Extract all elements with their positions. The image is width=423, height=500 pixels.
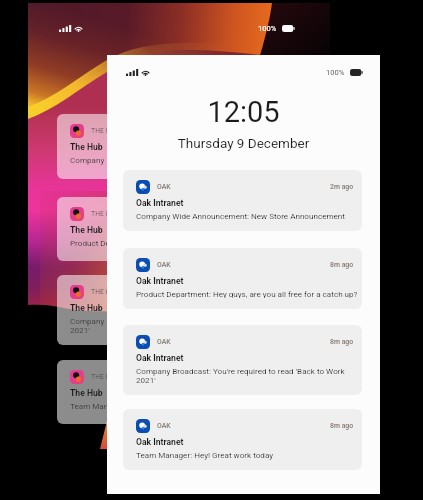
staticText: 8m ago xyxy=(330,422,354,430)
staticText: Company Broadcast: You're required to re… xyxy=(136,366,345,375)
staticText: 100% xyxy=(258,24,277,33)
staticText: Oak Intranet xyxy=(136,276,184,286)
button[interactable]: OAK xyxy=(123,325,362,395)
staticText: The Hub xyxy=(70,142,103,152)
staticText: 12:05 xyxy=(107,95,380,129)
staticText: The Hub xyxy=(70,303,103,313)
button[interactable]: OAK xyxy=(123,409,362,470)
button[interactable]: THE HUB xyxy=(57,360,295,424)
staticText: Team Man xyxy=(70,401,109,410)
staticText: Company xyxy=(70,316,105,325)
staticText: OAK xyxy=(157,183,171,191)
button[interactable]: THE HUB xyxy=(57,275,295,345)
staticText: THE HUB xyxy=(91,373,120,381)
button[interactable]: THE HUB xyxy=(57,197,295,261)
staticText: 8m ago xyxy=(330,261,354,269)
staticText: Thursday 9 December xyxy=(107,135,380,151)
staticText: 2021' xyxy=(136,375,156,384)
staticText: The Hub xyxy=(70,225,103,235)
staticText: THE HUB xyxy=(91,127,120,135)
staticText: Oak Intranet xyxy=(136,198,184,208)
staticText: OAK xyxy=(157,261,171,269)
button[interactable]: OAK xyxy=(123,248,362,309)
staticText: OAK xyxy=(157,338,171,346)
staticText: Oak Intranet xyxy=(136,437,184,447)
staticText: 8m ago xyxy=(330,338,354,346)
staticText: The Hub xyxy=(70,388,103,398)
staticText: Team Manager: Hey! Great work today xyxy=(136,450,274,459)
button[interactable]: OAK xyxy=(123,170,362,231)
staticText: OAK xyxy=(157,422,171,430)
staticText: Company xyxy=(70,155,105,164)
staticText: 2m ago xyxy=(330,183,354,191)
staticText: THE HUB xyxy=(91,210,120,218)
button[interactable]: THE HUB xyxy=(57,114,295,179)
staticText: 100% xyxy=(326,68,345,77)
staticText: Company Wide Announcement: New Store Ann… xyxy=(136,211,345,220)
staticText: 2021' xyxy=(70,325,90,334)
staticText: Product De xyxy=(70,238,110,247)
staticText: THE HUB xyxy=(91,288,120,296)
staticText: Oak Intranet xyxy=(136,353,184,363)
staticText: Product Department: Hey guys, are you al… xyxy=(136,289,357,298)
